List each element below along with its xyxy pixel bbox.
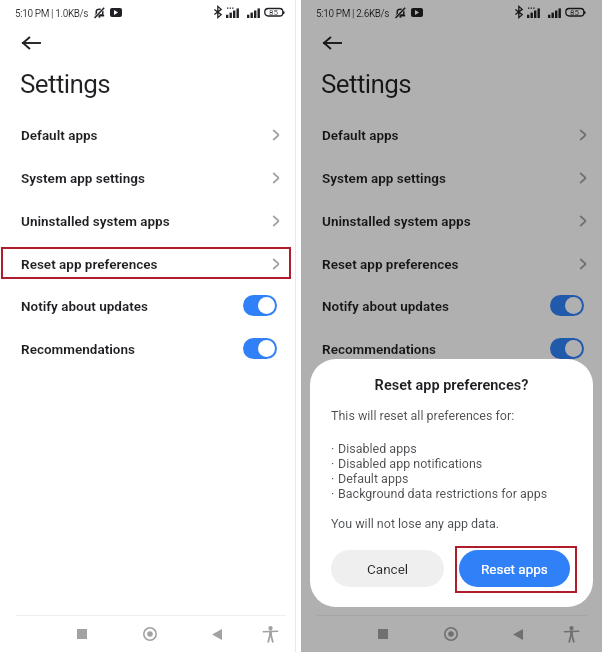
button[interactable]: Home <box>128 612 172 652</box>
button[interactable]: Uninstalled system apps <box>0 199 295 242</box>
button[interactable]: Toggle Notify about updates <box>550 295 584 316</box>
button[interactable]: System app settings <box>301 156 602 199</box>
button[interactable]: Recommendations <box>301 327 602 370</box>
button[interactable]: Uninstalled system apps <box>301 199 602 242</box>
staticText: · <box>331 486 335 501</box>
staticText: Disabled app notifications <box>338 456 483 471</box>
button[interactable]: Recents <box>60 612 104 652</box>
staticText: · <box>331 456 335 471</box>
staticText: Default apps <box>21 127 98 143</box>
button[interactable]: Reset apps <box>459 550 570 587</box>
button[interactable]: Notify about updates <box>0 284 295 327</box>
staticText: Settings <box>20 69 111 99</box>
staticText: System app settings <box>322 170 446 186</box>
staticText: Disabled apps <box>338 441 417 456</box>
button[interactable]: System app settings <box>0 156 295 199</box>
button[interactable]: Default apps <box>0 113 295 156</box>
staticText: Default apps <box>322 127 399 143</box>
staticText: Recommendations <box>322 341 436 357</box>
staticText: Reset apps <box>481 561 548 577</box>
staticText: Default apps <box>338 471 409 486</box>
staticText: Reset app preferences <box>21 256 158 272</box>
staticText: · <box>331 441 335 456</box>
button[interactable]: Cancel <box>331 550 444 587</box>
button[interactable]: Recents <box>361 612 405 652</box>
staticText: 85 <box>269 8 278 17</box>
staticText: Notify about updates <box>322 298 449 314</box>
staticText: · <box>331 471 335 486</box>
button[interactable]: Accessibility <box>248 612 292 652</box>
staticText: Notify about updates <box>21 298 148 314</box>
button[interactable]: Recommendations <box>0 327 295 370</box>
staticText: Reset app preferences <box>322 256 459 272</box>
button[interactable]: Back <box>9 21 53 65</box>
button[interactable]: Toggle Recommendations <box>550 338 584 359</box>
staticText: 5:10 PM | 1.0KB/s <box>15 8 89 20</box>
button[interactable]: Default apps <box>301 113 602 156</box>
staticText: System app settings <box>21 170 145 186</box>
button[interactable]: Back <box>195 612 239 652</box>
staticText: Recommendations <box>21 341 135 357</box>
staticText: Reset app preferences? <box>310 377 593 394</box>
staticText: Cancel <box>367 561 409 577</box>
button[interactable]: Back <box>496 612 540 652</box>
staticText: You will not lose any app data. <box>331 516 500 531</box>
button[interactable]: Notify about updates <box>301 284 602 327</box>
button[interactable]: Back <box>310 21 354 65</box>
button[interactable]: Toggle Recommendations <box>243 338 277 359</box>
button[interactable]: Toggle Notify about updates <box>243 295 277 316</box>
staticText: Uninstalled system apps <box>322 213 471 229</box>
button[interactable]: Home <box>429 612 473 652</box>
button[interactable]: Reset app preferences <box>0 242 295 285</box>
staticText: 5:10 PM | 2.6KB/s <box>316 8 390 20</box>
staticText: This will reset all preferences for: <box>331 408 515 423</box>
staticText: Background data restrictions for apps <box>338 486 548 501</box>
button[interactable]: Accessibility <box>549 612 593 652</box>
staticText: Settings <box>321 69 412 99</box>
staticText: 85 <box>570 8 579 17</box>
staticText: Uninstalled system apps <box>21 213 170 229</box>
button[interactable]: Reset app preferences <box>301 242 602 285</box>
